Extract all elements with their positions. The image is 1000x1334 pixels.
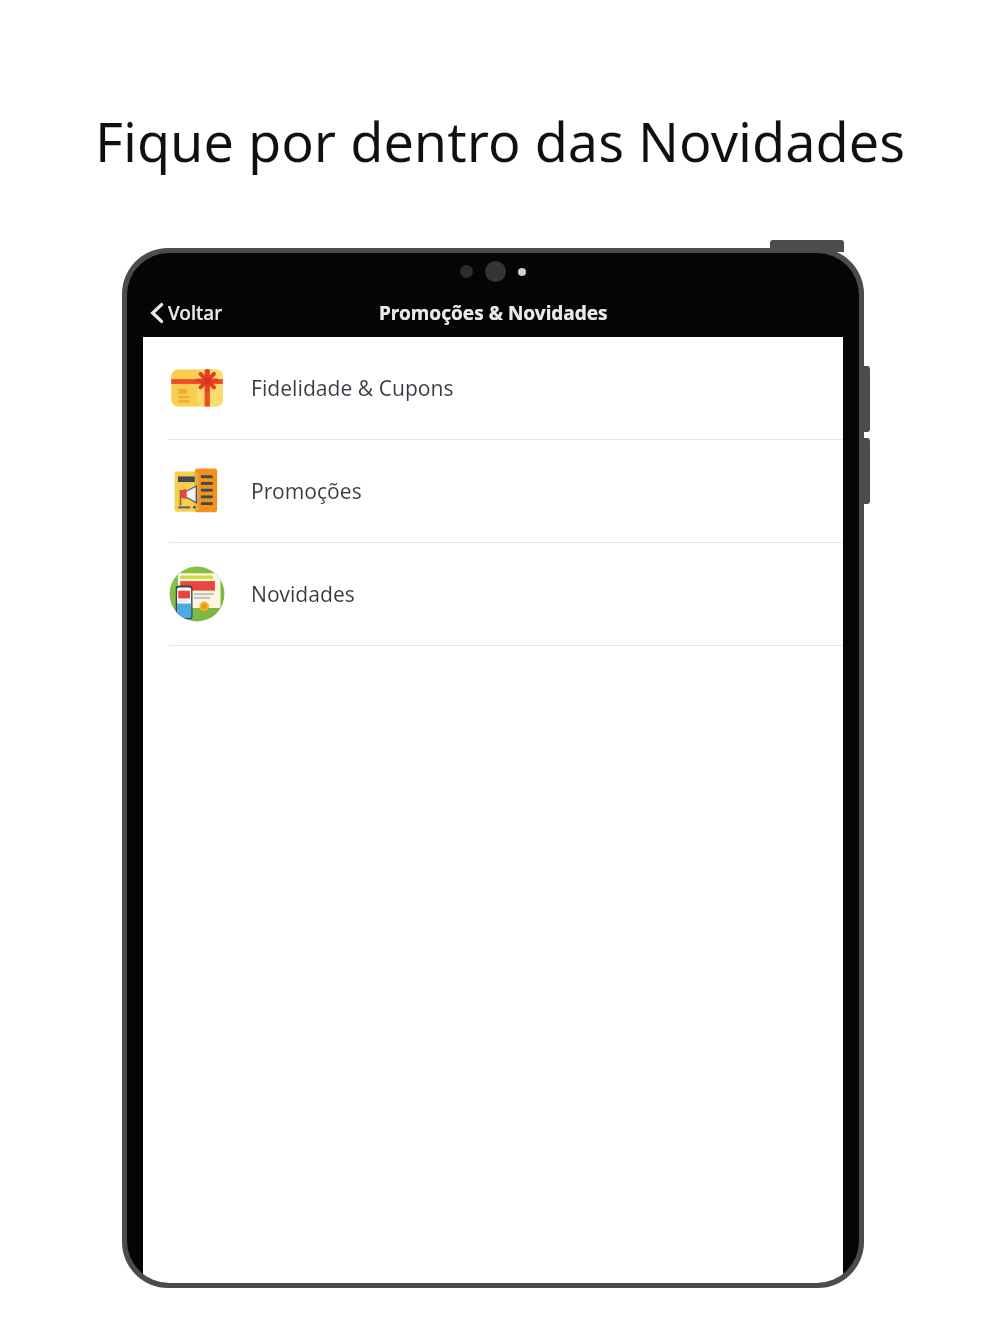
other: Fidelidade e Cupons <box>169 360 225 416</box>
staticText: Voltar <box>168 300 223 326</box>
button[interactable]: Voltar <box>145 294 229 332</box>
button[interactable]: Promoções <box>143 440 843 543</box>
staticText: Fidelidade & Cupons <box>251 374 454 403</box>
staticText: Promoções <box>251 477 362 506</box>
button[interactable]: Novidades <box>143 543 843 646</box>
staticText: Fique por dentro das Novidades <box>24 104 976 178</box>
other: Novidades <box>169 566 225 622</box>
staticText: Promoções & Novidades <box>379 300 608 326</box>
staticText: Novidades <box>251 580 355 609</box>
button[interactable]: Fidelidade e Cupons <box>143 337 843 440</box>
other: Promoções <box>169 463 225 519</box>
